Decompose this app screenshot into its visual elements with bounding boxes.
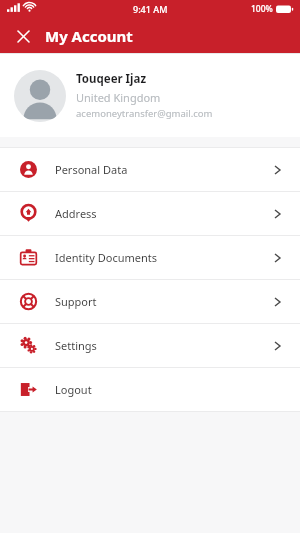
button[interactable]: Identity Documents bbox=[0, 236, 300, 279]
button[interactable]: Logout bbox=[0, 368, 300, 411]
staticText: Personal Data bbox=[55, 162, 272, 177]
staticText: United Kingdom bbox=[76, 90, 161, 105]
button[interactable]: Touqeer Ijaz bbox=[0, 54, 300, 137]
button[interactable]: Support bbox=[0, 280, 300, 323]
button[interactable]: Address bbox=[0, 192, 300, 235]
staticText: 9:41 AM bbox=[133, 3, 168, 15]
button[interactable]: Close bbox=[10, 23, 36, 49]
staticText: My Account bbox=[45, 26, 133, 46]
staticText: acemoneytransfer@gmail.com bbox=[76, 107, 213, 120]
staticText: Identity Documents bbox=[55, 250, 272, 265]
staticText: Settings bbox=[55, 338, 272, 353]
staticText: Touqeer Ijaz bbox=[76, 71, 147, 87]
button[interactable]: Settings bbox=[0, 324, 300, 367]
staticText: 100% bbox=[251, 3, 273, 15]
staticText: Support bbox=[55, 294, 272, 309]
staticText: Logout bbox=[55, 382, 282, 397]
button[interactable]: Personal Data bbox=[0, 148, 300, 191]
staticText: Address bbox=[55, 206, 272, 221]
